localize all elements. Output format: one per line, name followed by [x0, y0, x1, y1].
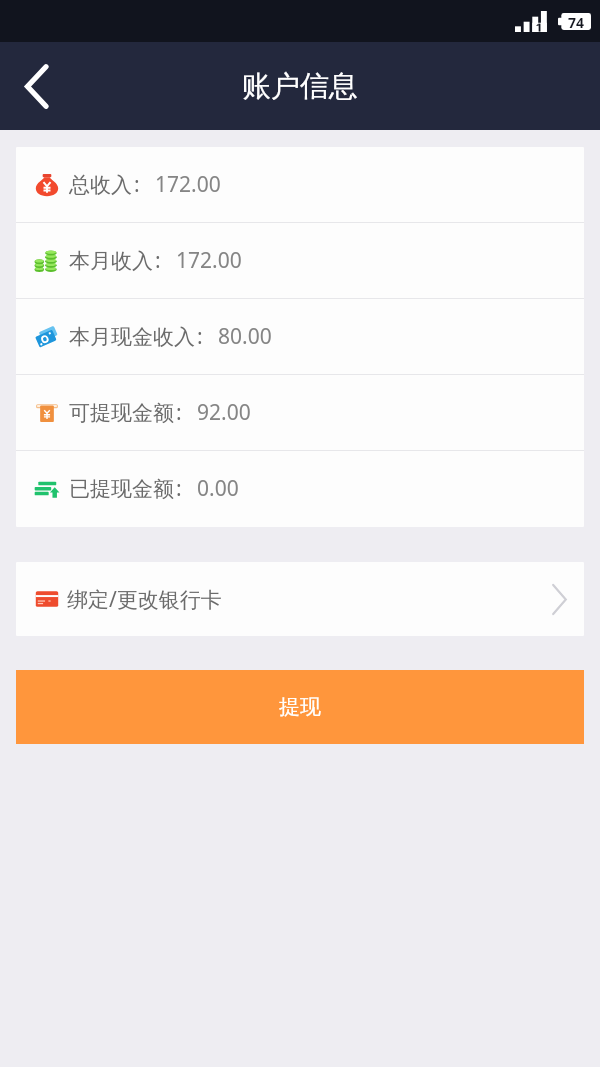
staticText: : — [155, 246, 161, 275]
staticText: 账户信息 — [242, 68, 358, 105]
staticText: 172.00 — [155, 170, 221, 199]
staticText: : — [197, 322, 203, 351]
button[interactable]: 本月现金收入 — [16, 299, 584, 374]
button[interactable]: 提现 — [16, 670, 584, 744]
staticText: : — [176, 474, 182, 503]
button[interactable]: 可提现金额 — [16, 375, 584, 450]
staticText: 本月收入 — [69, 248, 153, 274]
button[interactable]: 总收入 — [16, 147, 584, 222]
staticText: 0.00 — [197, 474, 239, 503]
staticText: 74 — [568, 13, 585, 30]
staticText: 提现 — [279, 694, 321, 720]
staticText: : — [134, 170, 140, 199]
button[interactable]: 绑定/更改银行卡 — [16, 562, 584, 636]
staticText: 绑定/更改银行卡 — [67, 585, 222, 614]
staticText: 172.00 — [176, 246, 242, 275]
staticText: : — [176, 398, 182, 427]
staticText: 本月现金收入 — [69, 324, 195, 350]
button[interactable]: Back — [0, 50, 72, 122]
staticText: 已提现金额 — [69, 476, 174, 502]
staticText: 可提现金额 — [69, 400, 174, 426]
staticText: 总收入 — [69, 172, 132, 198]
staticText: 92.00 — [197, 398, 251, 427]
button[interactable]: 已提现金额 — [16, 451, 584, 526]
button[interactable]: 本月收入 — [16, 223, 584, 298]
staticText: 80.00 — [218, 322, 272, 351]
